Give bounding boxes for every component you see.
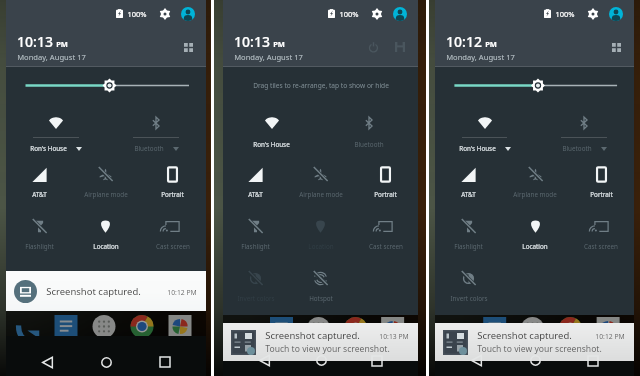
button[interactable]: Location xyxy=(502,207,568,259)
staticText: Airplane mode xyxy=(513,190,557,199)
button[interactable]: Cast screen xyxy=(353,207,418,259)
staticText: Ron's House xyxy=(30,144,67,153)
button[interactable]: AT&T xyxy=(6,155,72,207)
button[interactable]: Brightness xyxy=(6,67,206,103)
staticText: 10:13 xyxy=(17,32,53,51)
button[interactable]: Airplane mode xyxy=(502,155,568,207)
button[interactable]: Switch user xyxy=(393,7,407,21)
staticText: AT&T xyxy=(248,190,263,199)
button[interactable]: Invert colors xyxy=(435,259,502,311)
staticText: PM xyxy=(485,39,497,49)
button[interactable]: Portrait xyxy=(353,155,418,207)
staticText: Touch to view your screenshot. xyxy=(477,343,602,355)
button[interactable]: Recent apps xyxy=(364,353,390,368)
staticText: Invert colors xyxy=(237,294,275,303)
staticText: Touch to view your screenshot. xyxy=(265,343,390,355)
staticText: Airplane mode xyxy=(299,190,343,199)
staticText: 100% xyxy=(339,9,359,19)
button[interactable]: Back xyxy=(34,349,60,375)
staticText: AT&T xyxy=(32,190,47,199)
button[interactable]: Screenshot captured. xyxy=(223,323,418,361)
button[interactable]: Portrait xyxy=(568,155,634,207)
button[interactable]: Switch user xyxy=(609,7,623,21)
staticText: Location xyxy=(308,242,334,251)
staticText: Screenshot captured. xyxy=(46,285,141,298)
button[interactable]: AT&T xyxy=(223,155,288,207)
button[interactable]: Home xyxy=(93,349,119,375)
staticText: Cast screen xyxy=(156,242,190,251)
button[interactable]: Settings xyxy=(158,7,172,21)
staticText: Flashlight xyxy=(454,242,483,251)
staticText: PM xyxy=(273,39,285,49)
button[interactable]: Flashlight xyxy=(223,207,288,259)
button[interactable]: Back xyxy=(463,353,489,368)
button[interactable]: Edit tiles xyxy=(609,40,623,54)
staticText: Flashlight xyxy=(241,242,270,251)
button[interactable]: Brightness xyxy=(435,67,634,103)
button[interactable]: Edit tiles xyxy=(181,40,195,54)
button[interactable]: Reset tiles xyxy=(366,40,380,54)
button[interactable]: Cast screen xyxy=(568,207,634,259)
button[interactable]: Portrait xyxy=(139,155,206,207)
button[interactable]: Hotspot xyxy=(288,259,353,311)
staticText: Cast screen xyxy=(369,242,403,251)
staticText: 10:12 PM xyxy=(167,288,197,297)
button[interactable]: Flashlight xyxy=(435,207,502,259)
staticText: 10:13 PM xyxy=(379,332,409,341)
button[interactable]: Recent apps xyxy=(580,353,606,368)
staticText: Screenshot captured. xyxy=(477,329,572,342)
button[interactable]: Screenshot captured. xyxy=(6,271,206,311)
button[interactable]: Screenshot captured. xyxy=(435,323,634,361)
button[interactable]: Bluetooth xyxy=(320,103,418,155)
button[interactable]: Flashlight xyxy=(6,207,72,259)
staticText: Hotspot xyxy=(309,294,333,303)
staticText: Location xyxy=(93,242,119,251)
staticText: 10:12 xyxy=(446,32,482,51)
staticText: Portrait xyxy=(590,190,613,199)
staticText: Monday, August 17 xyxy=(17,52,86,62)
button[interactable]: Invert colors xyxy=(223,259,288,311)
button[interactable]: Recent apps xyxy=(152,349,178,375)
staticText: Cast screen xyxy=(584,242,618,251)
staticText: Ron's House xyxy=(459,144,496,153)
button[interactable]: Settings xyxy=(370,7,384,21)
staticText: Ron's House xyxy=(253,140,290,149)
button[interactable]: Bluetooth xyxy=(106,103,206,155)
staticText: AT&T xyxy=(461,190,476,199)
staticText: Location xyxy=(522,242,548,251)
staticText: 100% xyxy=(127,9,147,19)
button[interactable]: Cast screen xyxy=(139,207,206,259)
staticText: 100% xyxy=(555,9,575,19)
staticText: Monday, August 17 xyxy=(234,52,303,62)
staticText: 10:12 PM xyxy=(595,332,625,341)
button[interactable]: Location xyxy=(72,207,139,259)
staticText: Portrait xyxy=(374,190,397,199)
button[interactable]: Settings xyxy=(586,7,600,21)
button[interactable]: Home xyxy=(308,353,334,368)
button[interactable]: Location xyxy=(288,207,353,259)
staticText: Flashlight xyxy=(25,242,54,251)
button[interactable]: Save xyxy=(393,40,407,54)
button[interactable]: Ron's House xyxy=(435,103,534,155)
button[interactable]: Home xyxy=(522,353,548,368)
staticText: Screenshot captured. xyxy=(265,329,360,342)
button[interactable]: Switch user xyxy=(181,7,195,21)
button[interactable]: Back xyxy=(251,353,277,368)
staticText: PM xyxy=(56,39,68,49)
staticText: Airplane mode xyxy=(84,190,128,199)
staticText: Portrait xyxy=(161,190,184,199)
staticText: Invert colors xyxy=(450,294,488,303)
button[interactable]: Ron's House xyxy=(223,103,320,155)
button[interactable]: AT&T xyxy=(435,155,502,207)
staticText: Drag tiles to re-arrange, tap to show or… xyxy=(253,81,389,90)
staticText: 10:13 xyxy=(234,32,270,51)
button[interactable]: Airplane mode xyxy=(288,155,353,207)
button[interactable]: Ron's House xyxy=(6,103,106,155)
staticText: Bluetooth xyxy=(134,144,164,153)
button[interactable]: Airplane mode xyxy=(72,155,139,207)
staticText: Bluetooth xyxy=(562,144,592,153)
button[interactable]: Bluetooth xyxy=(534,103,634,155)
staticText: Monday, August 17 xyxy=(446,52,515,62)
staticText: Bluetooth xyxy=(354,140,384,149)
